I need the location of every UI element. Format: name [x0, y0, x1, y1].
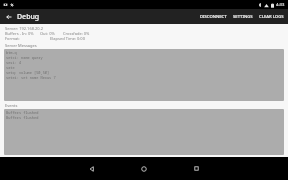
staticText: Debug — [17, 12, 40, 22]
button[interactable]: Back — [3, 11, 14, 22]
staticText: DISCONNECT — [200, 14, 227, 20]
button[interactable]: Home — [130, 157, 158, 180]
staticText: Buffers flushed — [6, 115, 39, 120]
button[interactable]: Recent apps — [182, 157, 210, 180]
staticText: Crossfade: 0% — [63, 31, 90, 36]
staticText: Buffers flushed — [6, 110, 39, 115]
staticText: sate — [6, 65, 15, 70]
staticText: setei: set name Nexus 7 — [6, 75, 56, 80]
staticText: btm-q — [6, 50, 17, 55]
staticText: Elapsed Time: 0:00 — [50, 36, 85, 41]
staticText: Events — [5, 103, 18, 108]
staticText: Format: — [5, 36, 20, 41]
button[interactable]: btm-q — [4, 49, 284, 101]
staticText: Server Messages — [5, 43, 37, 48]
staticText: setq: volume [50,50] — [6, 70, 50, 75]
staticText: sesi: 4 — [6, 60, 22, 65]
staticText: 4:33 — [276, 2, 285, 8]
staticText: Server: 192.168.20.2 — [5, 26, 43, 31]
button[interactable]: CLEAR LOGS — [256, 11, 288, 23]
button[interactable]: Back — [78, 157, 106, 180]
staticText: Out: 0% — [40, 31, 55, 36]
staticText: CLEAR LOGS — [259, 14, 284, 20]
button[interactable]: SETTINGS — [230, 11, 256, 23]
button[interactable]: DISCONNECT — [197, 11, 230, 23]
staticText: Buffers - In: 0% — [5, 31, 34, 36]
staticText: SETTINGS — [233, 14, 253, 20]
staticText: setci: name query — [6, 55, 43, 60]
